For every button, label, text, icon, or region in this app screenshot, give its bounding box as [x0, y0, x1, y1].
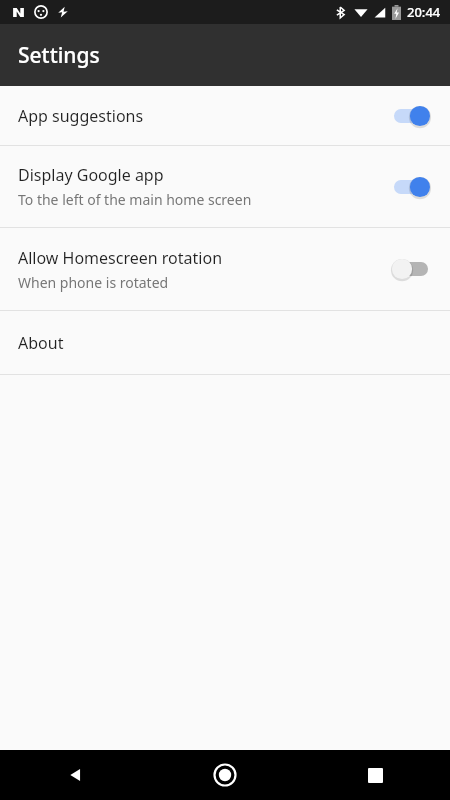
- staticText: To the left of the main home screen: [18, 190, 252, 209]
- staticText: About: [18, 332, 64, 354]
- staticText: 20:44: [407, 3, 441, 21]
- button[interactable]: Back: [0, 750, 150, 800]
- staticText: App suggestions: [18, 105, 144, 127]
- staticText: Allow Homescreen rotation: [18, 247, 223, 269]
- button[interactable]: Home: [150, 750, 300, 800]
- button[interactable]: Recent apps: [300, 750, 450, 800]
- button[interactable]: App suggestions: [0, 86, 450, 145]
- button[interactable]: Allow Homescreen rotation: [0, 228, 450, 310]
- staticText: Settings: [18, 41, 100, 70]
- staticText: Display Google app: [18, 164, 164, 186]
- button[interactable]: Off: [388, 253, 434, 285]
- button[interactable]: About: [0, 311, 450, 374]
- button[interactable]: On: [388, 171, 434, 203]
- button[interactable]: On: [388, 100, 434, 132]
- button[interactable]: Display Google app: [0, 146, 450, 227]
- staticText: When phone is rotated: [18, 273, 169, 292]
